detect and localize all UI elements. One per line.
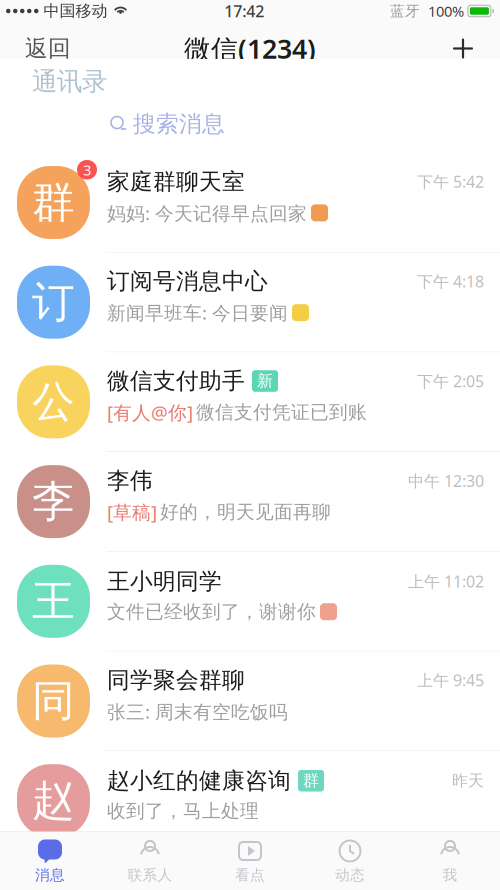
staticText: 微信支付凭证已到账: [196, 401, 367, 424]
staticText: 李: [32, 475, 75, 528]
button[interactable]: 订: [0, 253, 500, 352]
staticText: 下午 2:05: [417, 370, 484, 392]
staticText: 新闻早班车: 今日要闻: [107, 300, 288, 325]
staticText: 微信支付助手: [107, 367, 245, 395]
staticText: 新: [257, 371, 273, 391]
staticText: [草稿]: [107, 500, 157, 524]
staticText: 100%: [428, 1, 464, 21]
staticText: 订: [32, 276, 75, 328]
staticText: 张三: 周末有空吃饭吗: [107, 699, 288, 724]
staticText: 同学聚会群聊: [107, 666, 245, 694]
staticText: 陈敏: [107, 866, 153, 890]
staticText: 陈: [32, 874, 75, 890]
staticText: 昨天: [452, 871, 484, 890]
staticText: 联系人: [127, 866, 172, 884]
staticText: 微信(1234): [184, 31, 316, 66]
staticText: 李伟: [107, 467, 153, 495]
button[interactable]: 王: [0, 552, 500, 651]
button[interactable]: 动态: [300, 832, 400, 890]
staticText: 赵小红的健康咨询: [107, 767, 291, 795]
staticText: 下午 5:42: [417, 171, 484, 192]
button[interactable]: 李: [0, 452, 500, 551]
button[interactable]: 我: [400, 832, 500, 890]
button[interactable]: 返回: [21, 11, 75, 70]
button[interactable]: 同: [0, 651, 500, 750]
staticText: 消息: [35, 866, 65, 884]
staticText: 好的，明天见面再聊: [160, 501, 331, 523]
staticText: 中午 12:30: [408, 470, 484, 491]
button[interactable]: 赵: [0, 751, 500, 850]
button[interactable]: 陈: [0, 851, 500, 890]
staticText: 3: [83, 160, 91, 179]
staticText: 动态: [335, 866, 365, 884]
staticText: 赵: [32, 774, 75, 827]
staticText: 同: [32, 675, 75, 727]
staticText: 我: [442, 866, 457, 884]
staticText: 群: [303, 771, 319, 791]
button[interactable]: 联系人: [100, 832, 200, 890]
staticText: 17:42: [224, 0, 264, 22]
staticText: 上午 9:45: [417, 669, 484, 691]
staticText: 王小明同学: [107, 567, 222, 595]
staticText: 下午 4:18: [417, 271, 484, 292]
button[interactable]: 看点: [200, 832, 300, 890]
staticText: 妈妈: 今天记得早点回家: [107, 200, 307, 225]
staticText: 收到了，马上处理: [107, 800, 259, 823]
button[interactable]: 通讯录: [32, 59, 107, 100]
staticText: 通讯录: [32, 66, 107, 97]
staticText: 订阅号消息中心: [107, 267, 268, 295]
staticText: 中国移动: [43, 1, 107, 21]
button[interactable]: Add: [447, 16, 479, 64]
staticText: 公: [32, 376, 75, 428]
staticText: 搜索消息: [133, 110, 225, 138]
staticText: 群: [32, 176, 75, 229]
button[interactable]: Search: [110, 106, 225, 142]
button[interactable]: 公: [0, 352, 500, 451]
staticText: 上午 11:02: [408, 571, 484, 592]
staticText: 文件已经收到了，谢谢你: [107, 600, 316, 623]
staticText: [有人@你]: [107, 400, 193, 425]
staticText: 看点: [235, 866, 265, 884]
staticText: 蓝牙: [390, 2, 420, 20]
staticText: 家庭群聊天室: [107, 168, 245, 195]
staticText: 昨天: [452, 771, 484, 791]
button[interactable]: 消息: [0, 832, 100, 890]
staticText: 王: [32, 575, 75, 627]
button[interactable]: 群: [0, 153, 500, 252]
staticText: 返回: [25, 35, 71, 62]
